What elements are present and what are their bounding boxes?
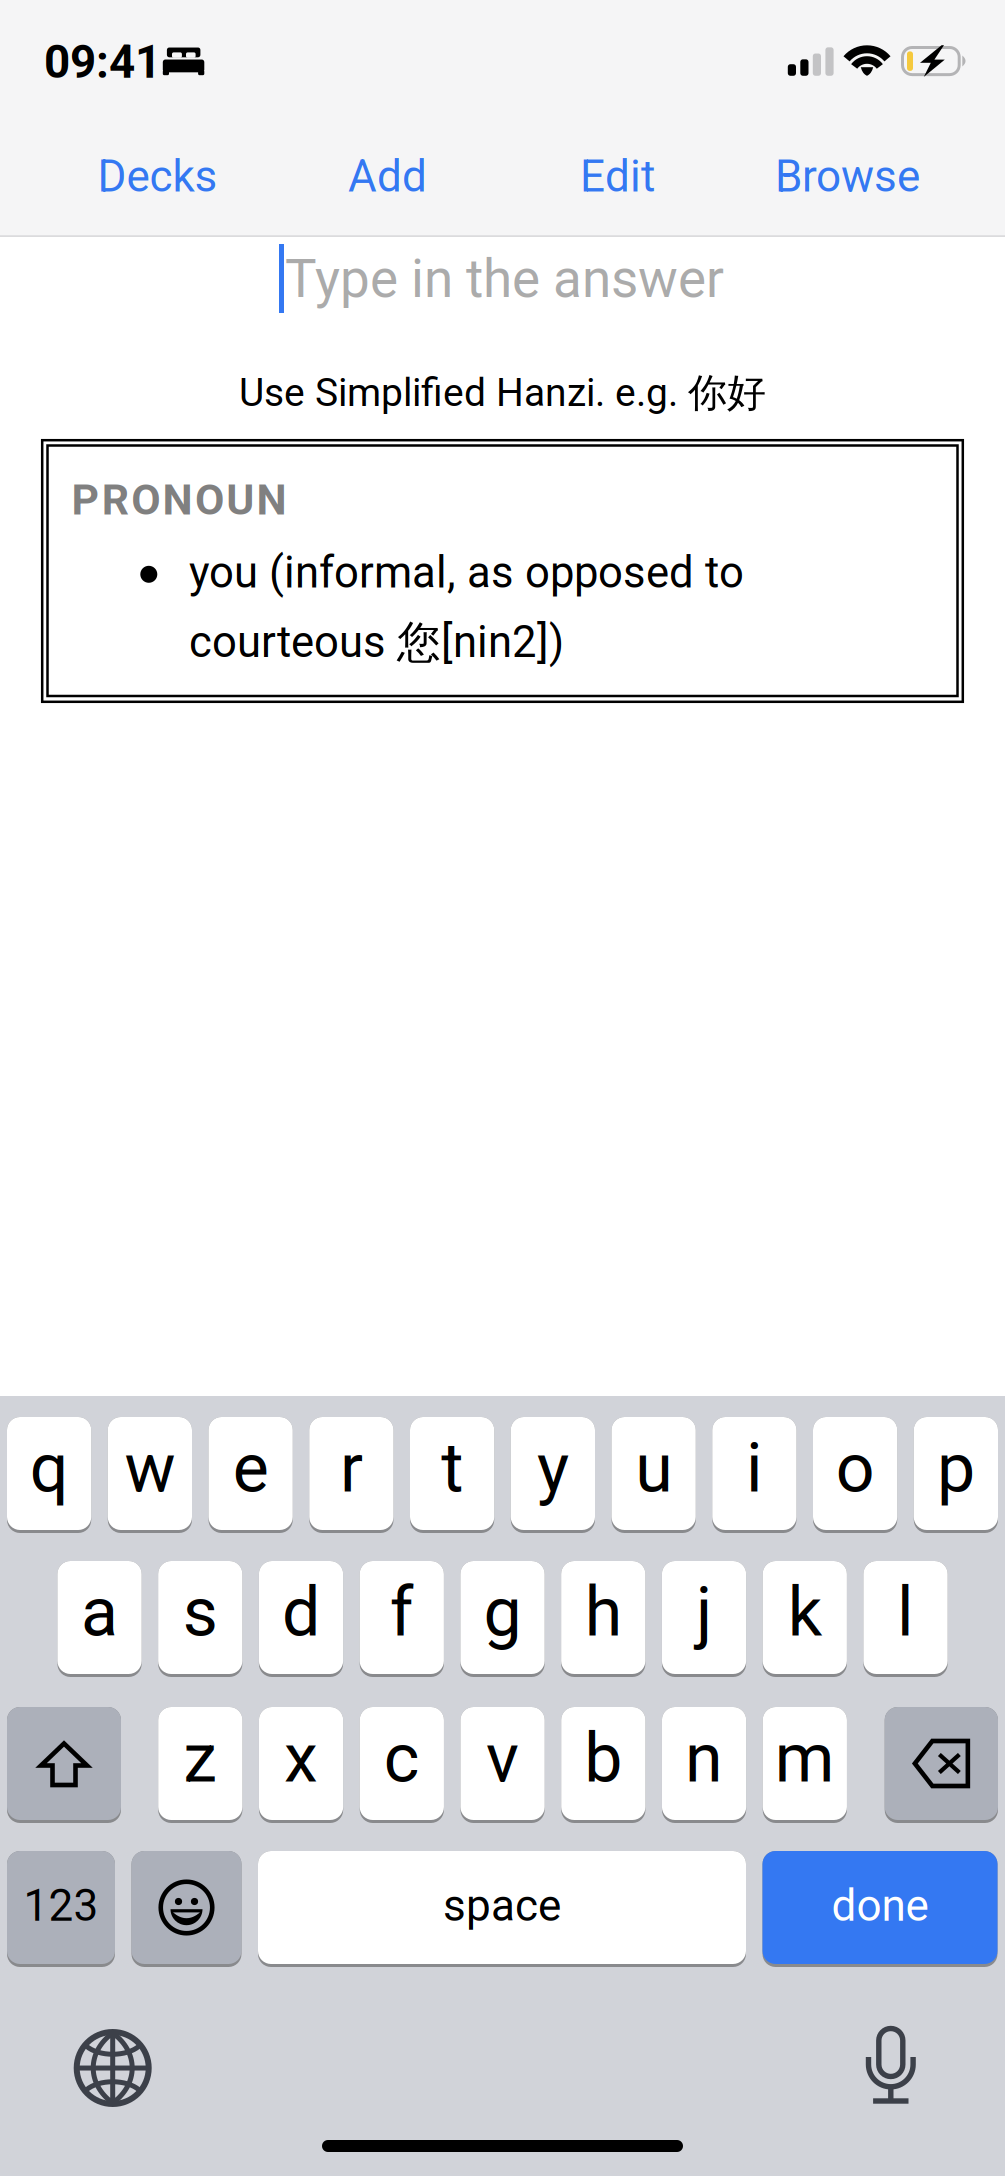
staticText: 123 [23,1880,98,1931]
staticText: space [443,1880,561,1931]
staticText: m [775,1718,835,1798]
button[interactable]: space [258,1851,746,1967]
staticText: s [183,1572,218,1652]
staticText: done [831,1880,928,1931]
staticText: x [284,1718,318,1798]
button[interactable]: y [511,1417,595,1533]
button[interactable]: f [360,1561,444,1677]
button[interactable]: s [158,1561,242,1677]
button[interactable]: o [813,1417,897,1533]
button[interactable]: Shift [7,1707,121,1823]
staticText: u [635,1428,672,1508]
staticText: y [537,1428,569,1508]
button[interactable]: r [309,1417,393,1533]
button[interactable]: k [763,1561,847,1677]
button[interactable]: i [712,1417,796,1533]
staticText: v [486,1718,519,1798]
staticText: Edit [580,151,655,202]
staticText: 09:41 [44,35,161,89]
button[interactable]: Next keyboard [48,2018,178,2118]
button[interactable]: l [863,1561,948,1677]
staticText: d [282,1572,320,1652]
button[interactable]: Emoji [131,1851,241,1967]
staticText: Browse [775,151,920,202]
staticText: e [233,1428,269,1508]
staticText: i [746,1428,763,1508]
button[interactable]: Browse [732,122,962,230]
button[interactable]: j [662,1561,746,1677]
staticText: n [685,1718,723,1798]
button[interactable]: p [914,1417,998,1533]
staticText: f [390,1572,414,1652]
button[interactable]: v [460,1707,545,1823]
button[interactable]: e [208,1417,293,1533]
staticText: q [30,1428,69,1508]
staticText: j [696,1572,712,1652]
staticText: you (informal, as opposed to courteous 您… [189,547,744,670]
button[interactable]: Dictation [826,2016,956,2116]
button[interactable]: q [7,1417,91,1533]
staticText: Add [348,151,427,202]
staticText: h [585,1572,622,1652]
staticText: o [836,1428,875,1508]
button[interactable]: m [763,1707,847,1823]
button[interactable]: a [57,1561,142,1677]
staticText: z [183,1718,217,1798]
staticText: c [384,1718,420,1798]
button[interactable]: u [611,1417,696,1533]
staticText: p [937,1428,975,1508]
button[interactable]: x [259,1707,343,1823]
staticText: l [897,1572,914,1652]
staticText: g [483,1572,521,1652]
staticText: Type in the answer [285,248,724,310]
staticText: r [340,1428,363,1508]
button[interactable]: Decks [42,122,272,230]
button[interactable]: Delete [885,1707,998,1823]
staticText: Decks [97,151,217,202]
button[interactable]: c [360,1707,444,1823]
button[interactable]: Type in the answer [0,236,1005,326]
staticText: k [788,1572,822,1652]
staticText: w [124,1428,175,1508]
button[interactable]: n [662,1707,746,1823]
button[interactable]: done [762,1851,997,1967]
button[interactable]: 123 [7,1851,115,1967]
staticText: b [584,1718,622,1798]
button[interactable]: g [460,1561,545,1677]
staticText: a [81,1572,118,1652]
button[interactable]: b [561,1707,645,1823]
button[interactable]: Add [272,122,502,230]
button[interactable]: t [410,1417,494,1533]
button[interactable]: z [158,1707,242,1823]
staticText: Use Simplified Hanzi. e.g. 你好 [239,368,766,417]
staticText: PRONOUN [71,475,287,525]
button[interactable]: d [259,1561,343,1677]
button[interactable]: w [108,1417,192,1533]
button[interactable]: Edit [502,122,732,230]
button[interactable]: h [561,1561,645,1677]
staticText: t [441,1428,463,1508]
